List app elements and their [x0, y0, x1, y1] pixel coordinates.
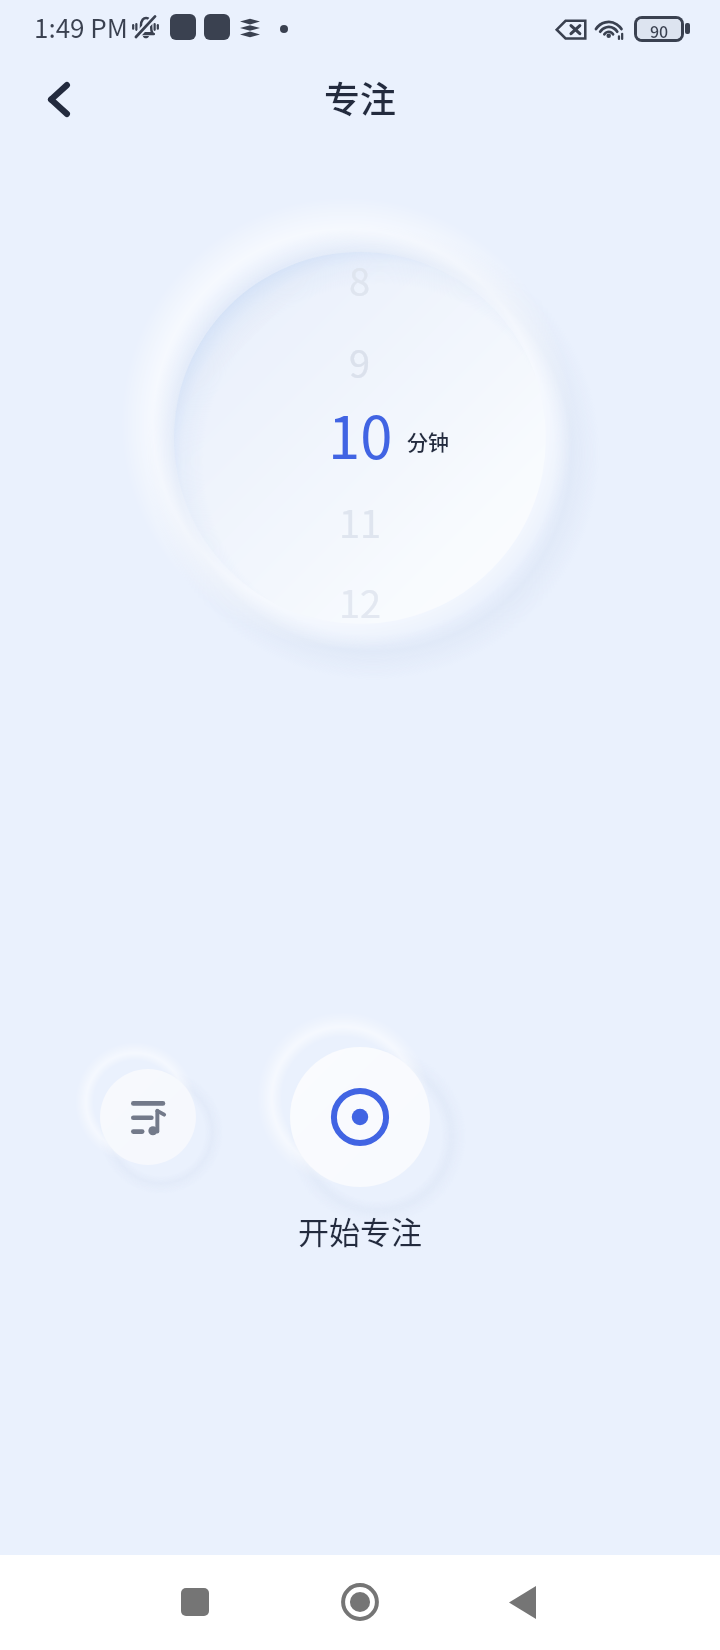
staticText: 分钟	[407, 426, 449, 456]
button[interactable]: Back	[34, 74, 84, 124]
button[interactable]	[174, 252, 546, 624]
staticText: 10	[328, 392, 393, 476]
staticText: 8	[349, 252, 371, 307]
button[interactable]: Recent apps	[181, 1588, 209, 1616]
staticText: 90	[650, 19, 669, 39]
button[interactable]: Home	[341, 1583, 379, 1621]
button[interactable]: Back	[509, 1586, 536, 1619]
button[interactable]: Start focus	[290, 1047, 430, 1187]
staticText: 9	[349, 334, 371, 389]
staticText: 专注	[324, 71, 397, 123]
staticText: 12	[339, 574, 382, 629]
staticText: 11	[339, 494, 382, 549]
staticText: 开始专注	[298, 1208, 422, 1253]
button[interactable]: Playlist	[100, 1069, 196, 1165]
staticText: 1:49 PM	[34, 8, 128, 46]
